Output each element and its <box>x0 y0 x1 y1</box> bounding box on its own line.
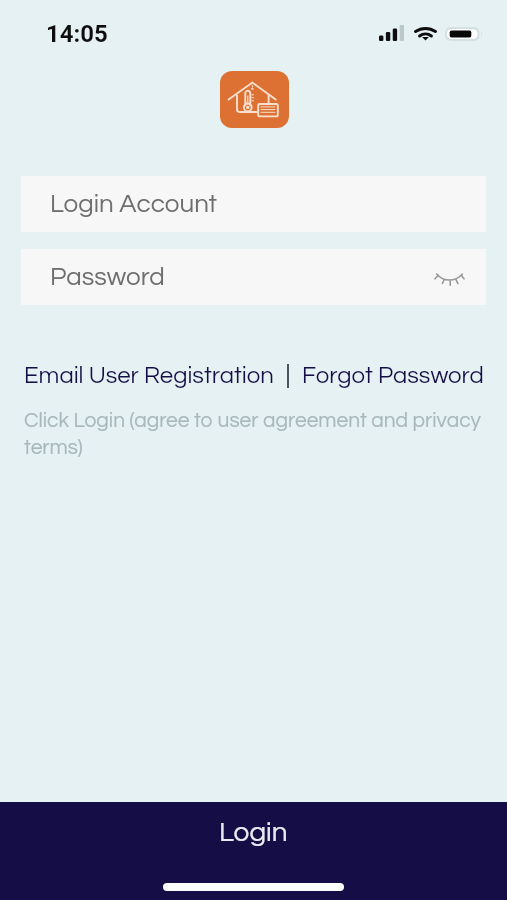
button[interactable]: App logo <box>220 71 289 128</box>
staticText: 14:05 <box>46 20 108 48</box>
staticText: Login Account <box>50 191 218 218</box>
button[interactable]: Login Account <box>21 176 486 232</box>
staticText: Login <box>219 818 288 847</box>
staticText: Password <box>50 264 165 291</box>
staticText: Click Login (agree to user agreement and… <box>24 410 489 459</box>
button[interactable]: Login <box>0 802 507 900</box>
staticText: Forgot Password <box>302 363 484 388</box>
button[interactable]: Email User Registration <box>24 363 274 388</box>
button[interactable]: Password <box>21 249 486 305</box>
button[interactable]: Forgot Password <box>302 363 484 388</box>
staticText: Email User Registration <box>24 363 274 388</box>
button[interactable]: Show password <box>431 259 467 295</box>
